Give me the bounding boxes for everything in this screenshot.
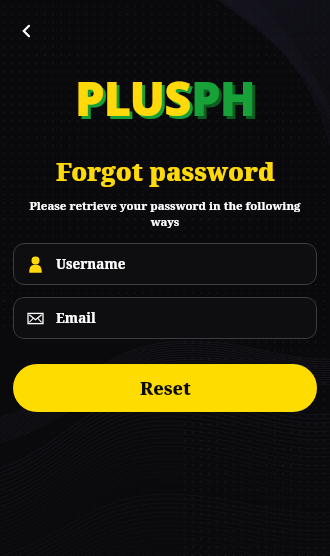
- staticText: PLUS: [75, 66, 191, 130]
- staticText: Forgot password: [56, 154, 275, 188]
- button[interactable]: Username: [13, 243, 317, 285]
- staticText: Email: [56, 309, 96, 327]
- staticText: Reset: [140, 376, 191, 400]
- button[interactable]: Email: [13, 297, 317, 339]
- staticText: PLUS: [78, 69, 194, 133]
- staticText: PH: [194, 69, 258, 133]
- button[interactable]: Back: [8, 12, 46, 50]
- staticText: Please retrieve your password in the fol…: [20, 198, 310, 229]
- staticText: PH: [191, 66, 255, 130]
- staticText: Username: [56, 255, 126, 273]
- button[interactable]: Reset: [13, 364, 317, 412]
